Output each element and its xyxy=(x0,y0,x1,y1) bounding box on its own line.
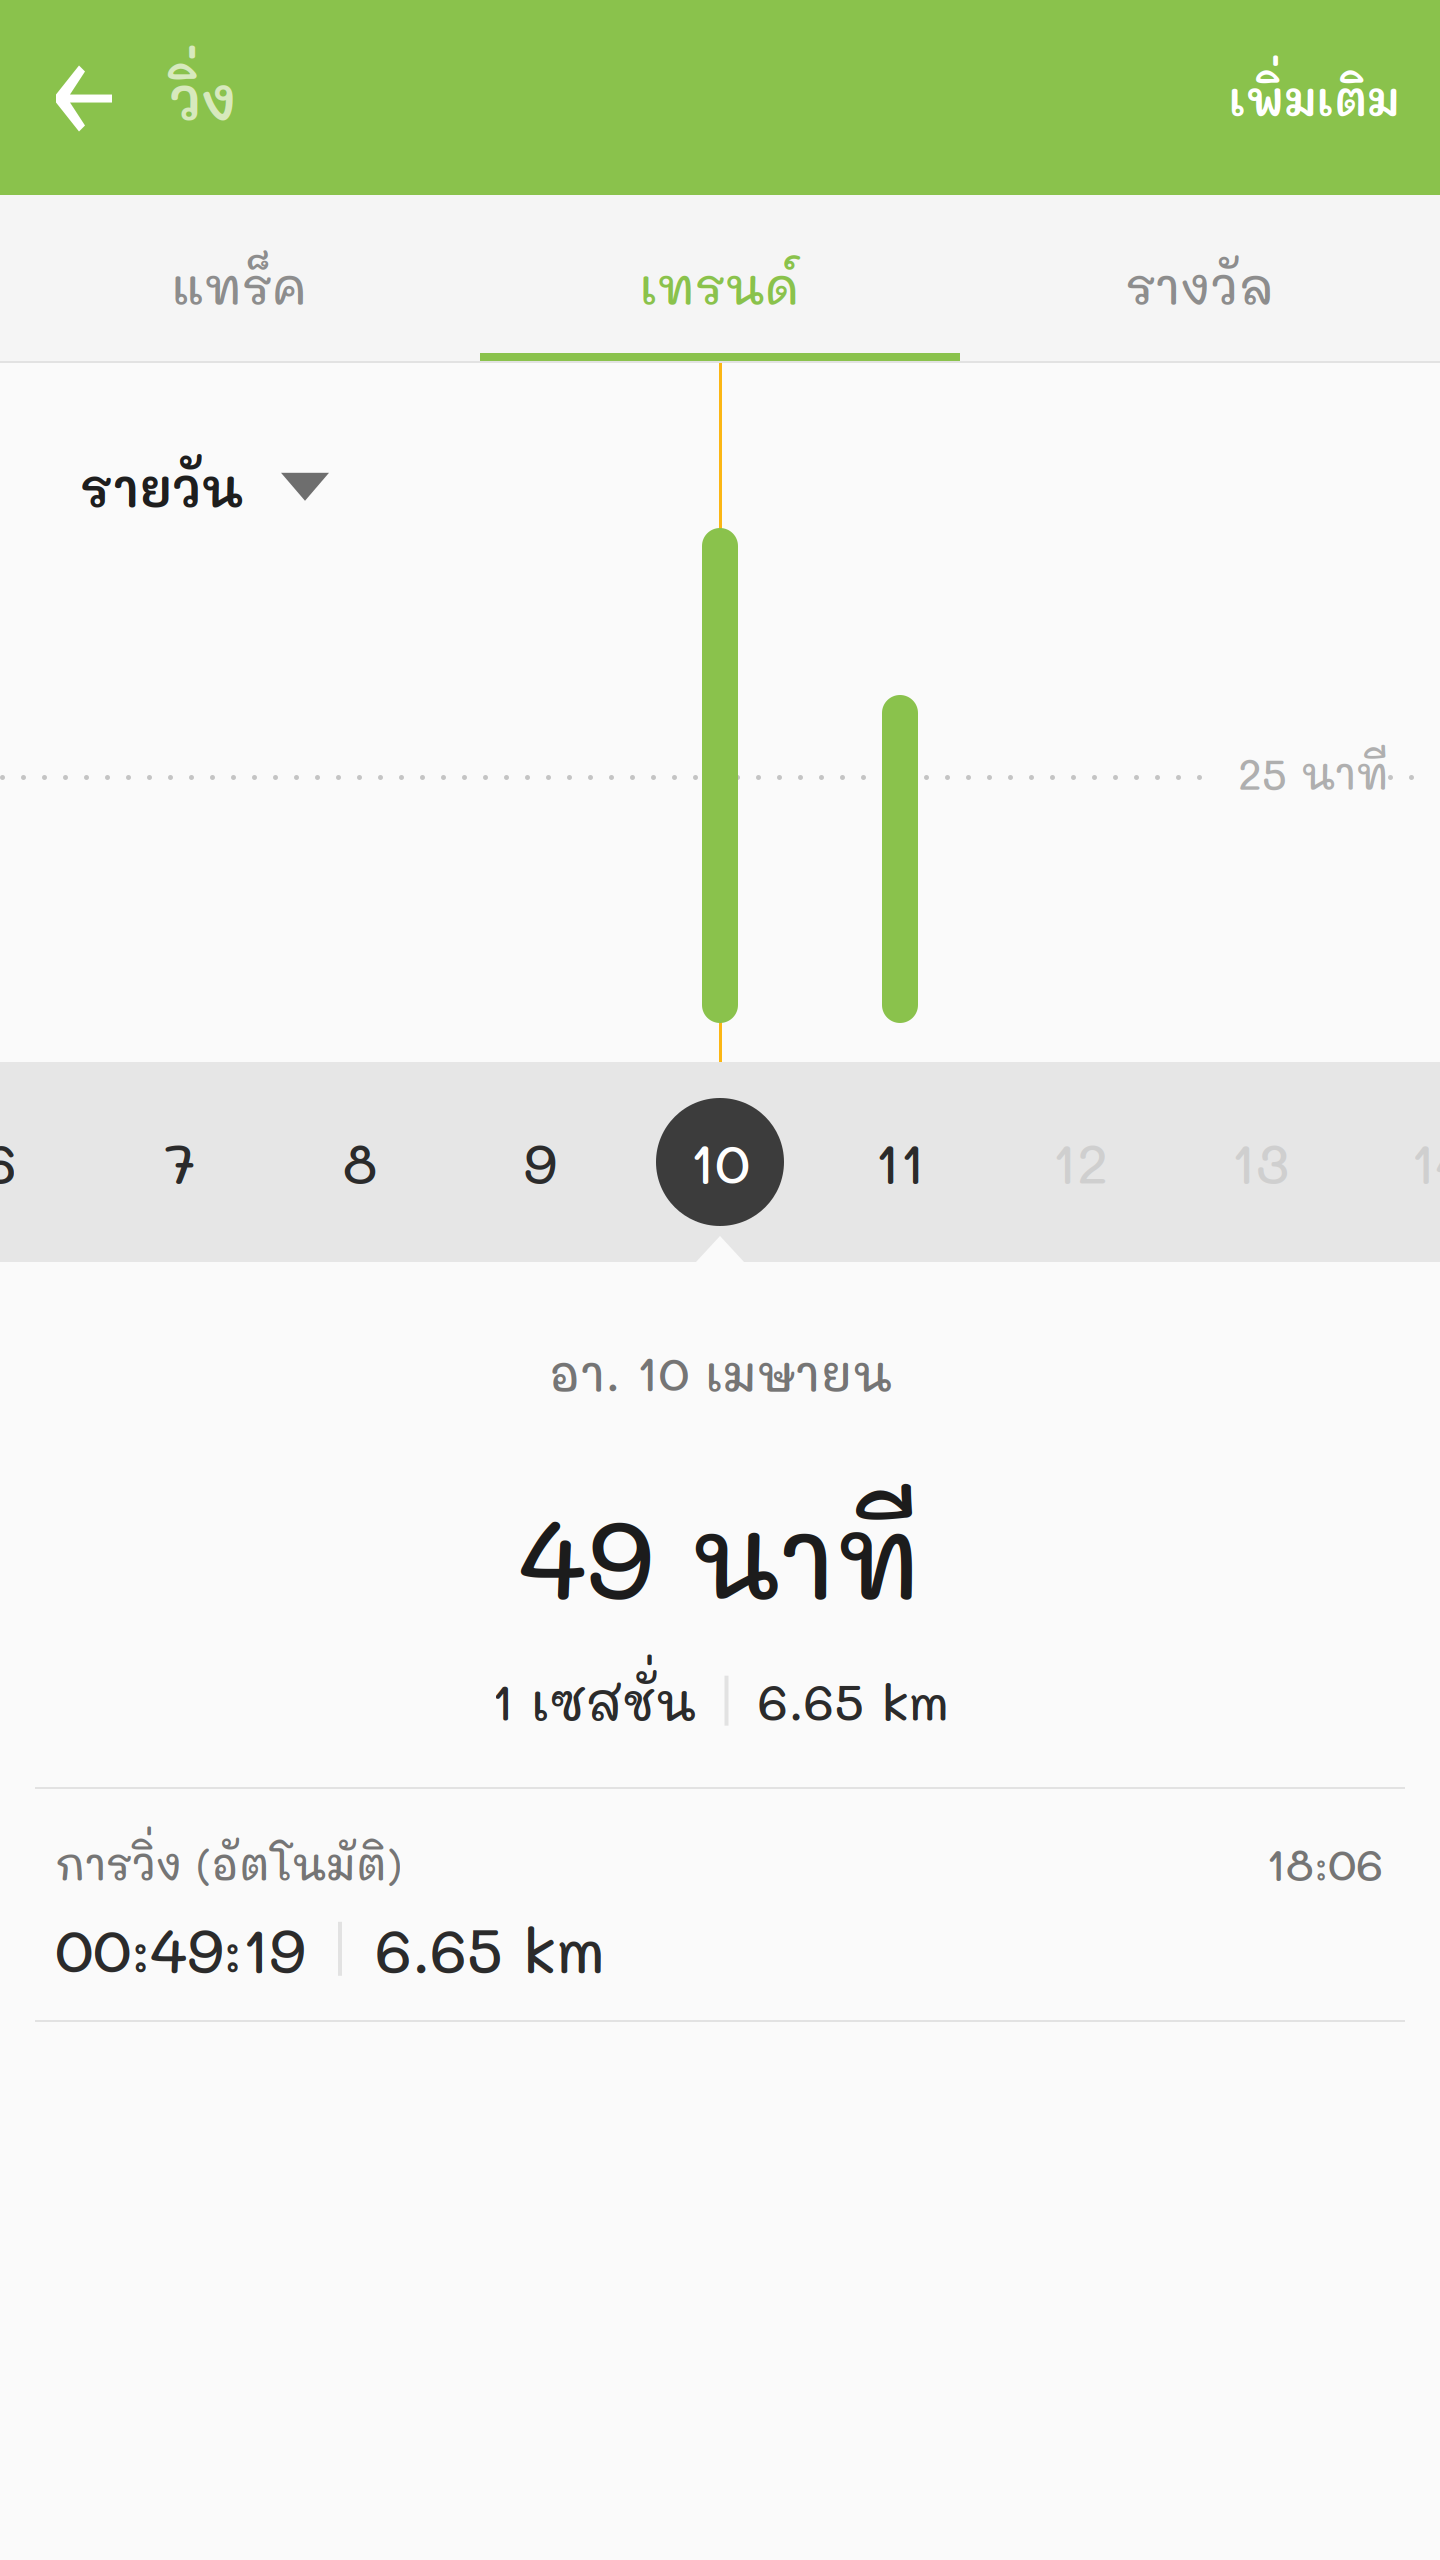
staticText: 7 xyxy=(164,1126,195,1198)
staticText: 12 xyxy=(1052,1126,1108,1198)
staticText: เทรนด์ xyxy=(640,253,800,317)
staticText: อา. 10 เมษายน xyxy=(548,1340,891,1404)
staticText: 9 xyxy=(523,1126,556,1198)
staticText: 14 xyxy=(1410,1126,1440,1198)
staticText: การวิ่ง (อัตโนมัติ) xyxy=(55,1836,402,1891)
button[interactable]: เพิ่มเติม xyxy=(1229,0,1440,195)
staticText: เพิ่มเติม xyxy=(1229,67,1400,128)
button[interactable]: 7 xyxy=(90,1062,270,1262)
staticText: รายวัน xyxy=(80,453,243,521)
staticText: 49 นาที xyxy=(518,1482,921,1628)
staticText: 1 เซสชั่น xyxy=(491,1668,695,1734)
button[interactable]: 8 xyxy=(270,1062,450,1262)
button[interactable]: 6 xyxy=(0,1062,90,1262)
staticText: วิ่ง xyxy=(169,60,236,135)
button[interactable]: 9 xyxy=(450,1062,630,1262)
button[interactable]: แทร็ค xyxy=(0,195,480,353)
button[interactable]: Back xyxy=(0,0,169,195)
button[interactable]: รางวัล xyxy=(960,195,1440,353)
staticText: 8 xyxy=(343,1126,377,1198)
staticText: แทร็ค xyxy=(172,253,308,317)
staticText: 13 xyxy=(1231,1126,1289,1198)
staticText: 6.65 km xyxy=(757,1668,948,1734)
staticText: 11 xyxy=(875,1126,925,1198)
staticText: 25 นาที xyxy=(1238,745,1389,800)
button[interactable]: 13 xyxy=(1170,1062,1350,1262)
button[interactable]: การวิ่ง (อัตโนมัติ) xyxy=(0,1789,1440,2020)
button[interactable]: เทรนด์ xyxy=(480,195,960,353)
staticText: 18:06 xyxy=(1266,1834,1383,1893)
staticText: 00:49:19 xyxy=(55,1909,305,1989)
button[interactable]: 10 xyxy=(630,1062,810,1262)
staticText: 10 xyxy=(690,1126,750,1198)
staticText: รางวัล xyxy=(1125,253,1274,317)
staticText: 6.65 km xyxy=(375,1909,605,1989)
button[interactable]: รายวัน xyxy=(80,439,347,535)
button[interactable]: 11 xyxy=(810,1062,990,1262)
staticText: 6 xyxy=(0,1126,17,1198)
